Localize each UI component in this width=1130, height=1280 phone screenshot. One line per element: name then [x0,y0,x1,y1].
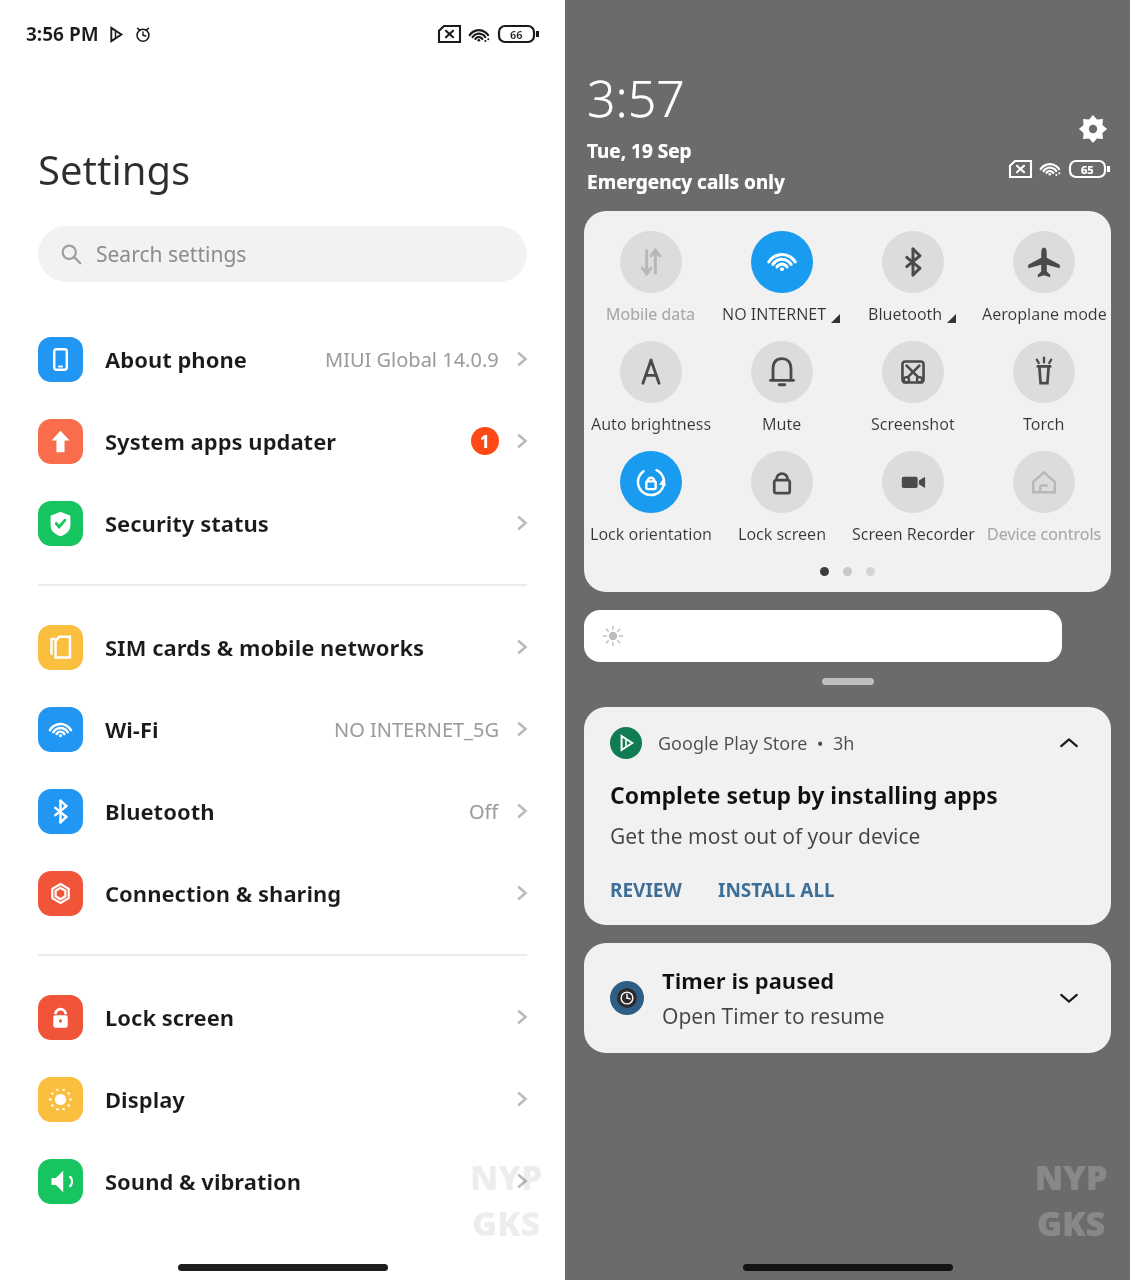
button[interactable]: Wi-Fi [0,688,565,770]
button[interactable]: NO INTERNET [718,231,846,325]
button[interactable]: REVIEW [610,877,682,903]
staticText: NO INTERNET_5G [334,716,499,743]
staticText: REVIEW [610,877,682,903]
staticText: Aeroplane mode [982,303,1107,325]
staticText: Bluetooth [105,796,215,826]
staticText: Torch [1023,413,1065,435]
staticText: Emergency calls only [587,169,785,195]
staticText: SIM cards & mobile networks [105,632,425,662]
button[interactable]: Google Play Store • 3h [584,707,1111,925]
staticText: Search settings [96,240,247,269]
button[interactable]: Screenshot [849,341,977,435]
button[interactable]: Expand notification [1053,982,1085,1014]
staticText: Sound & vibration [105,1166,302,1196]
staticText: 3:57 [587,64,685,132]
staticText: System apps updater [105,426,337,456]
staticText: 1 [480,430,490,453]
staticText: Get the most out of your device [610,822,921,851]
staticText: Bluetooth [868,303,943,325]
staticText: Open Timer to resume [662,1002,885,1031]
staticText: 3:56 PM [26,21,99,47]
staticText: Complete setup by installing apps [610,779,998,810]
staticText: Screen Recorder [852,523,975,545]
staticText: INSTALL ALL [718,877,835,903]
button[interactable]: Aeroplane mode [980,231,1108,325]
button[interactable]: Bluetooth [0,770,565,852]
button[interactable]: Lock screen [718,451,846,545]
staticText: Device controls [987,523,1102,545]
button[interactable]: Torch [980,341,1108,435]
staticText: Timer is paused [662,965,835,995]
staticText: Google Play Store • 3h [658,731,855,756]
button[interactable]: Auto brightness [587,341,715,435]
button[interactable]: Screen Recorder [849,451,977,545]
button[interactable]: Timer is paused [584,943,1111,1053]
button[interactable]: Device controls [980,451,1108,545]
button[interactable]: INSTALL ALL [718,877,835,903]
staticText: Lock screen [105,1002,235,1032]
staticText: NYP [1035,1154,1108,1200]
button[interactable]: Sound & vibration [0,1140,565,1222]
staticText: 66 [510,27,523,42]
staticText: Mobile data [606,303,696,325]
button[interactable]: Connection & sharing [0,852,565,934]
button[interactable]: Security status [0,482,565,564]
button[interactable]: Brightness [584,610,1062,662]
staticText: Screenshot [871,413,955,435]
staticText: Lock screen [738,523,827,545]
staticText: Display [105,1084,185,1114]
staticText: Auto brightness [591,413,712,435]
staticText: Wi-Fi [105,714,159,744]
button[interactable]: Lock screen [0,976,565,1058]
staticText: Security status [105,508,269,538]
button[interactable]: Settings [1076,112,1110,146]
button[interactable]: About phone [0,318,565,400]
button[interactable]: Mobile data [587,231,715,325]
staticText: MIUI Global 14.0.9 [325,346,499,373]
button[interactable]: Display [0,1058,565,1140]
staticText: Tue, 19 Sep [587,138,692,164]
staticText: Settings [38,142,191,196]
staticText: Off [469,798,499,825]
staticText: Connection & sharing [105,878,342,908]
button[interactable]: System apps updater [0,400,565,482]
button[interactable]: Collapse notification [1053,727,1085,759]
button[interactable]: SIM cards & mobile networks [0,606,565,688]
staticText: GKS [472,1200,541,1246]
button[interactable]: Bluetooth [849,231,977,325]
staticText: NYP [470,1154,543,1200]
staticText: 65 [1081,162,1094,177]
staticText: Mute [762,413,802,435]
staticText: About phone [105,344,247,374]
button[interactable]: Mute [718,341,846,435]
staticText: GKS [1037,1200,1106,1246]
button[interactable]: Lock orientation [587,451,715,545]
staticText: Lock orientation [590,523,713,545]
staticText: NO INTERNET [722,303,827,325]
button[interactable]: Search settings [38,226,527,282]
